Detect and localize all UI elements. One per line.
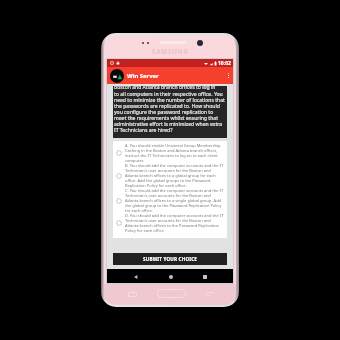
button[interactable]: Recent apps	[199, 271, 210, 282]
staticText: D. You should add the computer accounts …	[125, 213, 224, 233]
staticText: SAMSUNG	[152, 47, 189, 55]
staticText: C. You should add the computer accounts …	[125, 188, 224, 213]
staticText: B. You should add the computer accounts …	[125, 163, 224, 188]
button[interactable]: D. You should add the computer accounts …	[113, 213, 227, 233]
button[interactable]: Back	[130, 271, 141, 282]
staticText: SUBMIT YOUR CHOICE	[143, 256, 198, 262]
staticText: Boston and Atlanta branch offices to log…	[114, 86, 227, 134]
button[interactable]: A. You should enable Universal Group Mem…	[113, 143, 227, 163]
button[interactable]: Home	[165, 271, 176, 282]
staticText: 10:02	[218, 60, 231, 67]
staticText: Win Server	[127, 72, 159, 80]
button[interactable]: More options	[228, 73, 229, 78]
staticText: A. You should enable Universal Group Mem…	[125, 143, 221, 163]
button[interactable]: SUBMIT YOUR CHOICE	[113, 253, 227, 265]
button[interactable]: C. You should add the computer accounts …	[113, 188, 227, 213]
button[interactable]: B. You should add the computer accounts …	[113, 163, 227, 188]
